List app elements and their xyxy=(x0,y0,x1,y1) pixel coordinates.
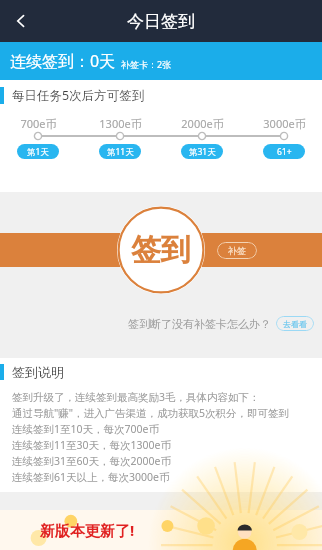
staticText: 连续签到：0天 xyxy=(10,50,116,72)
staticText: 通过导航"赚"，进入广告渠道，成功获取5次积分，即可签到 xyxy=(12,406,290,420)
button[interactable]: 第1天 xyxy=(17,144,59,159)
staticText: 签到升级了，连续签到最高奖励3毛，具体内容如下： xyxy=(12,390,260,404)
staticText: 去看看 xyxy=(283,319,307,329)
button[interactable]: 补签 xyxy=(217,242,257,259)
staticText: 1300e币 xyxy=(99,116,142,131)
staticText: 连续签到1至10天，每次700e币 xyxy=(12,422,159,436)
staticText: 700e币 xyxy=(20,116,57,131)
staticText: 每日任务5次后方可签到 xyxy=(12,87,145,104)
staticText: 连续签到11至30天，每次1300e币 xyxy=(12,438,171,452)
button[interactable]: 第11天 xyxy=(99,144,141,159)
staticText: 今日签到 xyxy=(127,11,195,32)
button[interactable]: 第31天 xyxy=(181,144,223,159)
button[interactable]: 新版本更新了! xyxy=(0,510,322,550)
staticText: 3000e币 xyxy=(263,116,306,131)
staticText: 连续签到61天以上，每次3000e币 xyxy=(12,470,170,484)
button[interactable]: 签到 xyxy=(117,206,205,294)
staticText: 补签卡：2张 xyxy=(121,58,172,70)
staticText: 签到说明 xyxy=(12,364,64,380)
staticText: 第11天 xyxy=(107,146,134,158)
button[interactable]: Back xyxy=(0,0,42,42)
staticText: 2000e币 xyxy=(181,116,224,131)
button[interactable]: 去看看 xyxy=(276,316,314,331)
staticText: 连续签到31至60天，每次2000e币 xyxy=(12,454,171,468)
staticText: 签到断了没有补签卡怎么办？ xyxy=(128,317,271,331)
staticText: 61+ xyxy=(277,146,292,158)
staticText: 签到 xyxy=(131,231,191,269)
staticText: 补签 xyxy=(228,245,246,256)
button[interactable]: 61+ xyxy=(263,144,305,159)
staticText: 第31天 xyxy=(189,146,216,158)
staticText: 新版本更新了! xyxy=(40,520,135,540)
staticText: 第1天 xyxy=(27,146,49,158)
